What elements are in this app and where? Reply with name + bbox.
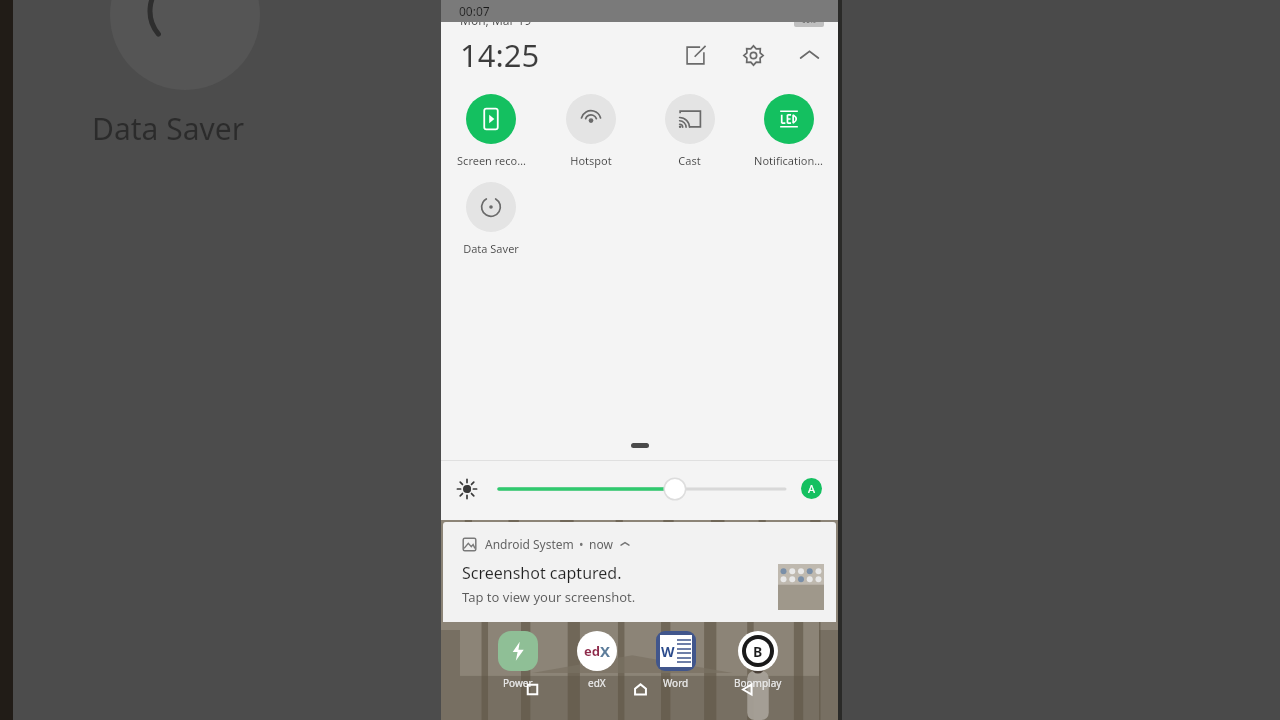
staticText: Notification… — [754, 153, 823, 168]
staticText: Power — [503, 676, 533, 690]
staticText: now — [589, 536, 613, 552]
button[interactable] — [499, 476, 785, 502]
button[interactable]: Android System — [443, 522, 836, 622]
button[interactable]: W — [655, 630, 697, 690]
button[interactable]: Hotspot — [541, 92, 640, 170]
button[interactable]: Collapse — [792, 38, 826, 72]
staticText: Tap to view your screenshot. — [462, 588, 636, 606]
button[interactable]: Screen reco… — [441, 92, 541, 170]
staticText: Screen reco… — [457, 153, 526, 168]
staticText: ed — [584, 642, 600, 660]
staticText: • — [579, 536, 584, 552]
button[interactable]: Notification… — [739, 92, 838, 170]
staticText: Data Saver — [92, 108, 245, 149]
staticText: W — [661, 642, 675, 661]
staticText: Mon, Mar 19 — [460, 12, 532, 28]
staticText: B — [753, 642, 763, 661]
staticText: Word — [663, 676, 689, 690]
staticText: Android System — [485, 536, 574, 552]
staticText: Cast — [678, 153, 701, 168]
button[interactable]: ed — [576, 630, 618, 690]
button[interactable]: Edit quick settings — [678, 38, 712, 72]
button[interactable]: Auto brightness — [801, 478, 822, 499]
staticText: Screenshot captured. — [462, 562, 622, 584]
staticText: X — [600, 641, 611, 661]
staticText: A — [808, 481, 816, 496]
staticText: 00:07 — [459, 3, 490, 19]
button[interactable]: B — [734, 630, 782, 690]
button[interactable]: Back — [730, 672, 764, 706]
button[interactable]: Cast — [640, 92, 739, 170]
button[interactable]: Recents — [515, 672, 549, 706]
staticText: 96% — [802, 16, 816, 26]
staticText: 14:25 — [460, 34, 540, 76]
button[interactable]: Home — [623, 672, 657, 706]
button[interactable]: Power — [497, 630, 539, 690]
button[interactable]: Data Saver — [441, 180, 540, 258]
staticText: edX — [588, 676, 606, 690]
staticText: Boomplay — [734, 676, 782, 690]
staticText: Hotspot — [570, 153, 612, 168]
button[interactable]: Settings — [736, 38, 770, 72]
staticText: Data Saver — [463, 241, 519, 256]
